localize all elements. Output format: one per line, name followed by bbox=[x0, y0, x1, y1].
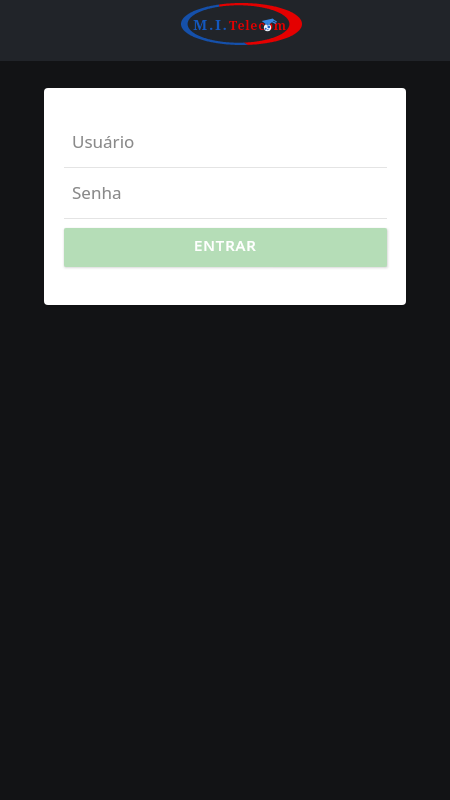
staticText: Usuário bbox=[72, 130, 135, 153]
staticText: M.I. bbox=[193, 14, 229, 34]
button[interactable]: Usuário bbox=[64, 119, 387, 167]
staticText: Senha bbox=[72, 181, 122, 204]
staticText: Telecom bbox=[229, 17, 287, 34]
button[interactable]: Senha bbox=[64, 170, 387, 218]
other: M.I. Telecom logo bbox=[181, 3, 302, 45]
button[interactable]: ENTRAR bbox=[64, 228, 387, 267]
staticText: ENTRAR bbox=[194, 235, 257, 255]
